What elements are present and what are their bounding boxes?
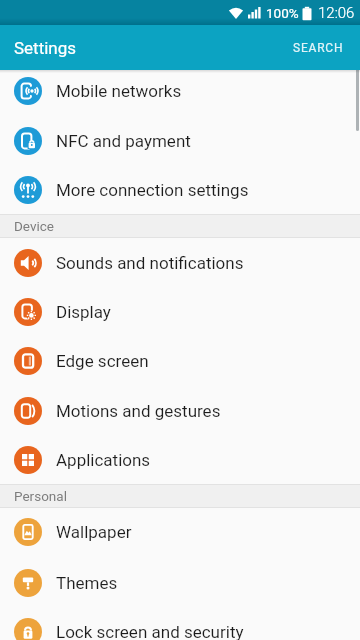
button[interactable]: Themes — [0, 558, 360, 607]
staticText: Edge screen — [56, 351, 149, 371]
button[interactable]: Applications — [0, 435, 360, 484]
staticText: Themes — [56, 573, 118, 593]
staticText: Mobile networks — [56, 81, 182, 101]
button[interactable]: Edge screen — [0, 336, 360, 385]
button[interactable]: Display — [0, 287, 360, 336]
staticText: Lock screen and security — [56, 622, 244, 640]
staticText: NFC and payment — [56, 131, 191, 151]
staticText: Device — [14, 218, 54, 234]
staticText: 12:06 — [318, 4, 355, 22]
staticText: Display — [56, 302, 111, 322]
staticText: More connection settings — [56, 180, 249, 200]
button[interactable]: NFC and payment — [0, 116, 360, 165]
button[interactable]: Mobile networks — [0, 66, 360, 115]
button[interactable]: Sounds and notifications — [0, 238, 360, 287]
button[interactable]: SEARCH — [285, 33, 352, 63]
button[interactable]: Wallpaper — [0, 507, 360, 556]
staticText: Personal — [14, 488, 67, 504]
button[interactable]: More connection settings — [0, 165, 360, 214]
staticText: Applications — [56, 450, 151, 470]
staticText: Sounds and notifications — [56, 253, 244, 273]
staticText: SEARCH — [293, 41, 344, 55]
staticText: 100% — [266, 5, 299, 21]
button[interactable]: Motions and gestures — [0, 386, 360, 435]
staticText: Settings — [14, 38, 77, 58]
staticText: Motions and gestures — [56, 401, 221, 421]
button[interactable]: Lock screen and security — [0, 607, 360, 640]
staticText: Wallpaper — [56, 522, 132, 542]
